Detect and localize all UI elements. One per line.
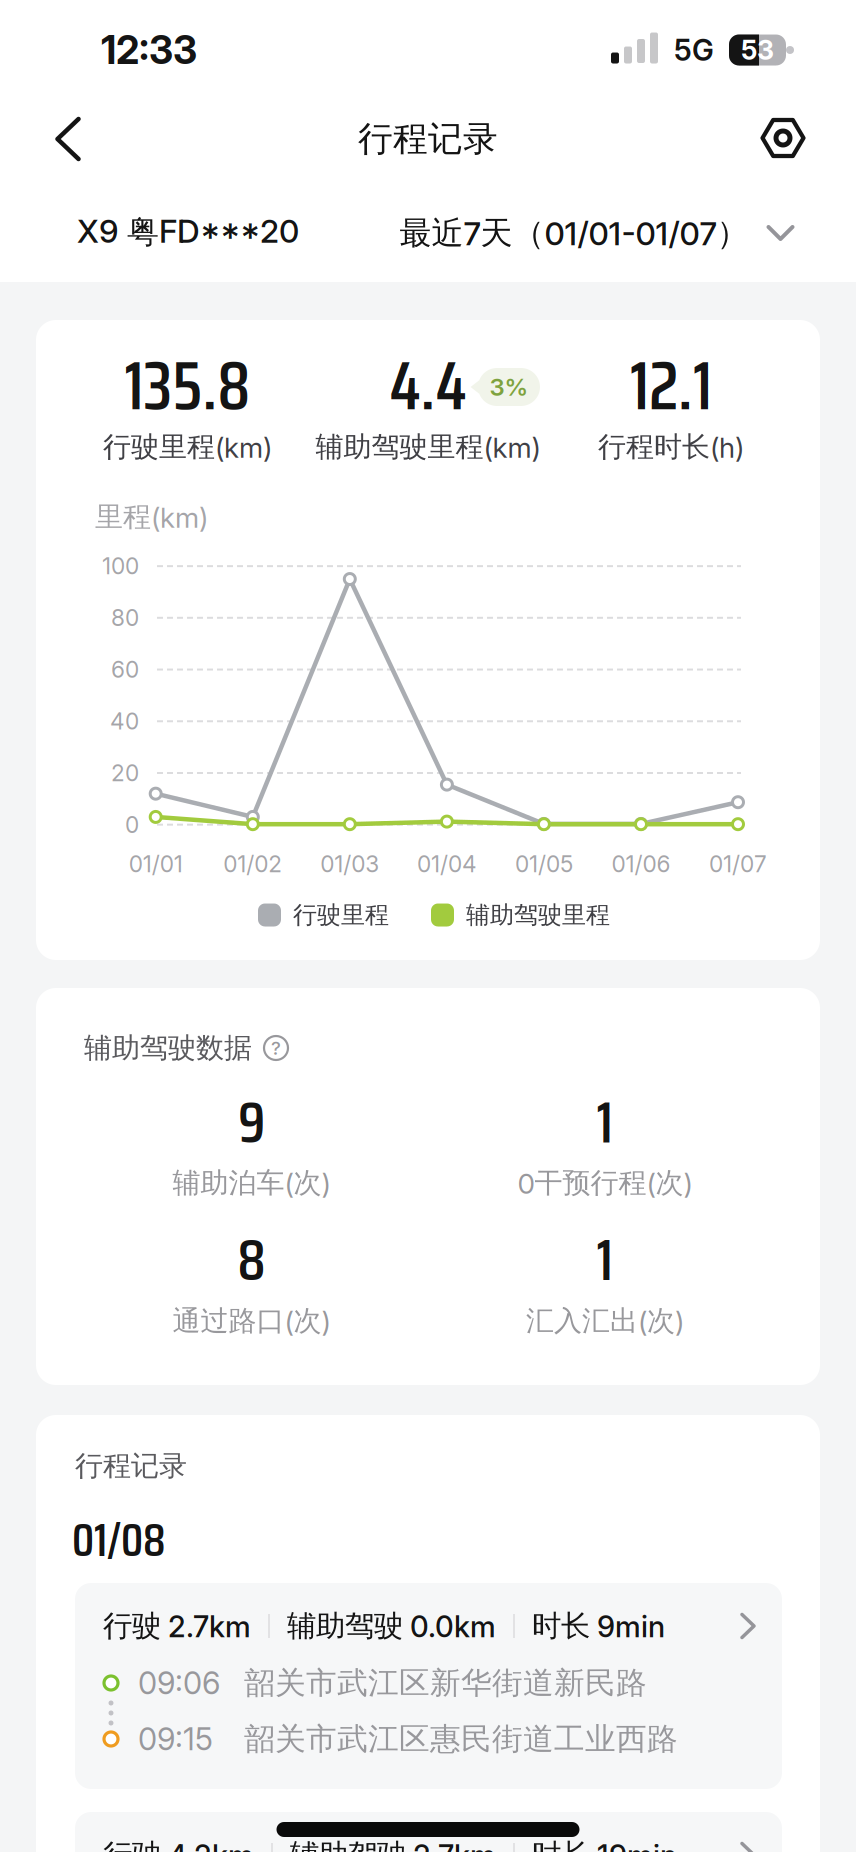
staticText: 辅助驾驶数据 [84,1030,252,1066]
staticText: 韶关市武江区惠民街道工业西路 [244,1720,678,1758]
staticText: 4.4 [389,333,466,438]
staticText: 通过路口(次) [172,1303,330,1339]
staticText: 行驶里程(km) [103,429,272,465]
button[interactable]: X9 粤FD***20 [77,212,299,252]
staticText: 行驶 4.2km [103,1836,254,1852]
staticText: 3% [489,372,528,401]
button[interactable]: Help [264,1036,288,1060]
staticText: 行程记录 [358,117,498,161]
staticText: 80 [111,604,139,631]
staticText: 里程(km) [95,499,208,535]
staticText: 辅助驾驶里程 [466,900,610,930]
button[interactable]: 行驶 4.2km [75,1812,782,1852]
staticText: 01/06 [611,850,670,878]
staticText: 01/04 [417,850,477,878]
staticText: 9 [238,1077,265,1168]
staticText: 12:33 [101,27,197,73]
staticText: 01/05 [515,850,573,878]
staticText: 01/03 [320,850,379,878]
staticText: 行程记录 [75,1448,187,1484]
staticText: 韶关市武江区新华街道新民路 [244,1664,647,1702]
staticText: 行驶 2.7km [103,1607,251,1644]
staticText: 20 [111,759,139,787]
button[interactable]: Settings [752,110,813,166]
staticText: 135.8 [124,333,250,438]
staticText: 01/01 [129,850,183,878]
staticText: 100 [102,552,139,580]
staticText: 5G [674,32,714,68]
button[interactable]: Back [41,109,94,169]
staticText: 53 [741,34,774,66]
staticText: 60 [111,656,139,683]
button[interactable]: 行驶 2.7km [75,1583,782,1789]
staticText: X9 粤FD***20 [77,212,299,252]
staticText: 01/07 [709,850,767,878]
staticText: 0 [125,811,139,838]
staticText: 8 [237,1215,265,1305]
staticText: 行驶里程 [293,900,389,930]
staticText: ? [271,1037,281,1059]
staticText: 40 [110,707,139,735]
staticText: 0干预行程(次) [517,1165,692,1201]
staticText: 09:06 [138,1664,220,1701]
staticText: 1 [596,1215,613,1305]
staticText: 时长 9min [532,1607,665,1644]
staticText: 01/08 [72,1504,166,1576]
staticText: 辅助驾驶里程(km) [315,429,540,465]
staticText: 时长 19min [532,1836,677,1852]
staticText: 辅助驾驶 0.0km [287,1607,496,1644]
button[interactable]: 最近7天（01/01-01/07） [399,213,792,253]
staticText: 辅助驾驶 2.7km [290,1836,496,1852]
staticText: 1 [596,1077,613,1168]
staticText: 辅助泊车(次) [172,1165,330,1201]
staticText: 09:15 [138,1720,213,1757]
staticText: 01/02 [223,850,282,878]
staticText: 12.1 [630,333,712,438]
staticText: 最近7天（01/01-01/07） [399,213,748,253]
staticText: 汇入汇出(次) [526,1303,684,1339]
staticText: 行程时长(h) [598,429,744,465]
